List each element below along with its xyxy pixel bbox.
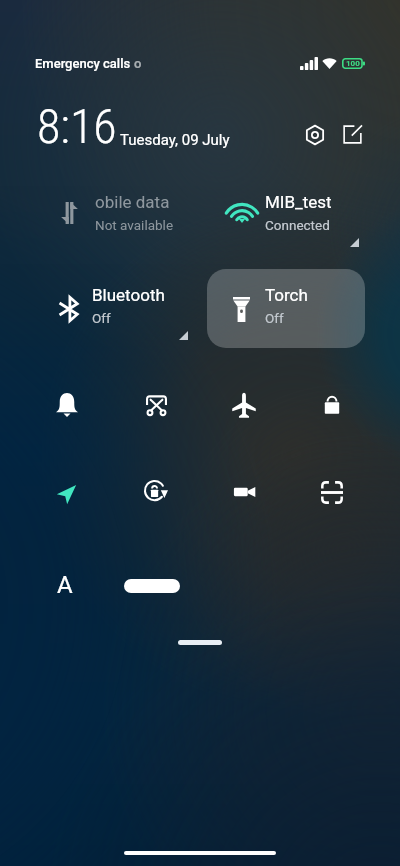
staticText: Emergency calls xyxy=(35,56,134,71)
button[interactable]: Torch xyxy=(207,269,365,348)
staticText: o xyxy=(134,56,142,71)
staticText: Connected xyxy=(265,217,330,233)
staticText: Tuesday, 09 July xyxy=(120,131,230,149)
staticText: Off xyxy=(265,310,284,326)
staticText: obile data xyxy=(95,192,170,212)
button[interactable]: Screen lock xyxy=(310,383,354,427)
staticText: Not available xyxy=(95,217,174,233)
button[interactable]: Wi-Fi xyxy=(207,176,365,255)
button[interactable]: Airplane mode xyxy=(222,383,266,427)
staticText: MIB_test xyxy=(265,192,332,212)
staticText: 8:16 xyxy=(37,98,117,154)
button[interactable]: Screen record xyxy=(222,470,266,514)
staticText: 100 xyxy=(346,59,360,68)
button[interactable]: Scan QR code xyxy=(310,470,354,514)
button[interactable]: Brightness xyxy=(124,579,180,593)
button[interactable]: Notifications xyxy=(45,383,89,427)
staticText: Bluetooth xyxy=(92,285,165,305)
button[interactable]: Location xyxy=(44,472,88,516)
button[interactable]: Settings xyxy=(296,116,333,153)
button[interactable]: Home xyxy=(124,851,276,855)
button[interactable]: Auto rotate xyxy=(134,470,178,514)
staticText: A xyxy=(57,571,73,599)
button[interactable]: Mobile data xyxy=(36,176,194,255)
button[interactable]: Bluetooth xyxy=(36,269,194,348)
button[interactable]: Edit tiles xyxy=(334,116,371,153)
staticText: Torch xyxy=(265,285,308,305)
staticText: Off xyxy=(92,310,111,326)
button[interactable]: Screenshot xyxy=(134,383,178,427)
